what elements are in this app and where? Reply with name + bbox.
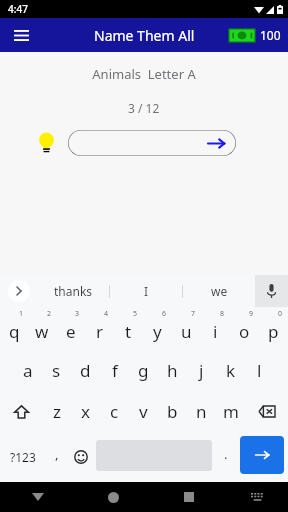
- button[interactable]: l: [245, 350, 274, 391]
- staticText: 6: [162, 309, 167, 319]
- staticText: z: [53, 400, 61, 423]
- button[interactable]: w: [28, 307, 56, 350]
- staticText: 7: [191, 309, 196, 319]
- button[interactable]: a: [13, 350, 42, 391]
- staticText: I: [144, 283, 149, 299]
- button[interactable]: d: [71, 350, 100, 391]
- button[interactable]: r: [85, 307, 114, 350]
- button[interactable]: h: [158, 350, 187, 391]
- button[interactable]: Switch keyboard: [227, 482, 288, 512]
- staticText: r: [96, 320, 104, 343]
- staticText: ?123: [10, 449, 36, 465]
- staticText: l: [257, 359, 262, 382]
- button[interactable]: b: [158, 391, 187, 432]
- button[interactable]: i: [201, 307, 230, 350]
- staticText: y: [153, 320, 162, 343]
- staticText: x: [81, 400, 90, 423]
- staticText: 3 / 12: [128, 100, 160, 116]
- staticText: w: [35, 320, 49, 343]
- button[interactable]: m: [216, 391, 245, 432]
- button[interactable]: ,: [45, 432, 68, 482]
- staticText: 5: [133, 309, 138, 319]
- button[interactable]: q: [0, 307, 28, 350]
- staticText: d: [80, 359, 91, 382]
- button[interactable]: u: [172, 307, 201, 350]
- button[interactable]: y: [143, 307, 172, 350]
- button[interactable]: o: [230, 307, 259, 350]
- staticText: n: [196, 400, 207, 423]
- staticText: f: [112, 359, 118, 382]
- button[interactable]: Back: [0, 482, 75, 512]
- button[interactable]: thanks: [38, 275, 109, 307]
- staticText: 4:47: [8, 2, 28, 16]
- staticText: ,: [55, 445, 59, 463]
- button[interactable]: Enter: [240, 436, 284, 474]
- staticText: h: [167, 359, 178, 382]
- button[interactable]: g: [129, 350, 158, 391]
- staticText: b: [167, 400, 178, 423]
- staticText: u: [181, 320, 192, 343]
- button[interactable]: [68, 130, 236, 156]
- staticText: o: [239, 320, 250, 343]
- staticText: c: [110, 400, 119, 423]
- staticText: a: [23, 359, 33, 382]
- staticText: we: [211, 283, 228, 299]
- staticText: i: [213, 320, 218, 343]
- staticText: 2: [47, 309, 52, 319]
- button[interactable]: s: [42, 350, 71, 391]
- staticText: Name Them All: [94, 26, 195, 45]
- button[interactable]: z: [42, 391, 71, 432]
- button[interactable]: I: [110, 275, 182, 307]
- staticText: e: [66, 320, 76, 343]
- staticText: g: [138, 359, 149, 382]
- button[interactable]: Recents: [151, 482, 227, 512]
- button[interactable]: t: [114, 307, 143, 350]
- button[interactable]: Hint: [38, 132, 55, 154]
- staticText: p: [268, 320, 279, 343]
- button[interactable]: Backspace: [245, 391, 288, 432]
- staticText: m: [223, 400, 239, 423]
- staticText: v: [139, 400, 148, 423]
- button[interactable]: p: [259, 307, 288, 350]
- staticText: k: [226, 359, 236, 382]
- button[interactable]: Shift: [0, 391, 42, 432]
- staticText: Animals Letter A: [92, 65, 196, 83]
- staticText: 8: [220, 309, 225, 319]
- staticText: 4: [104, 309, 109, 319]
- button[interactable]: Emoji: [68, 432, 94, 482]
- button[interactable]: Voice input: [255, 275, 288, 307]
- button[interactable]: c: [100, 391, 129, 432]
- button[interactable]: ?123: [0, 432, 45, 482]
- button[interactable]: x: [71, 391, 100, 432]
- staticText: q: [9, 320, 20, 343]
- button[interactable]: .: [214, 432, 237, 482]
- button[interactable]: 100: [229, 27, 281, 43]
- staticText: j: [199, 359, 204, 382]
- staticText: 3: [75, 309, 80, 319]
- button[interactable]: f: [100, 350, 129, 391]
- button[interactable]: Home: [75, 482, 151, 512]
- button[interactable]: n: [187, 391, 216, 432]
- staticText: 100: [260, 27, 281, 43]
- button[interactable]: j: [187, 350, 216, 391]
- button[interactable]: we: [183, 275, 255, 307]
- staticText: 1: [19, 309, 24, 319]
- staticText: s: [52, 359, 61, 382]
- button[interactable]: Menu: [6, 20, 36, 50]
- staticText: .: [224, 445, 228, 463]
- staticText: 9: [249, 309, 254, 319]
- staticText: 0: [278, 309, 283, 319]
- button[interactable]: e: [56, 307, 85, 350]
- staticText: thanks: [54, 283, 93, 299]
- button[interactable]: v: [129, 391, 158, 432]
- button[interactable]: More suggestions: [0, 275, 38, 307]
- button[interactable]: k: [216, 350, 245, 391]
- staticText: t: [125, 320, 132, 343]
